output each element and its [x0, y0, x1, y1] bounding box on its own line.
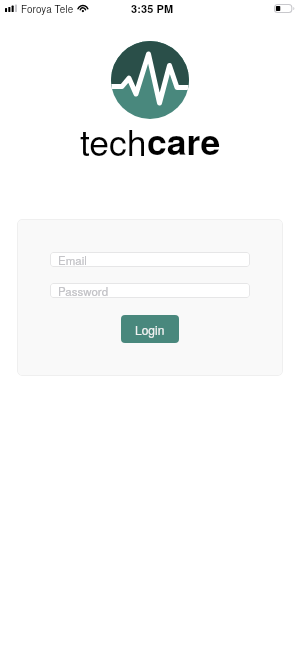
- staticText: Foroya Tele: [21, 2, 74, 16]
- button[interactable]: Password: [50, 283, 250, 298]
- staticText: Password: [58, 283, 109, 298]
- staticText: care: [147, 115, 221, 166]
- staticText: Login: [135, 321, 165, 338]
- staticText: 3:35 PM: [131, 1, 174, 17]
- button[interactable]: Email: [50, 252, 250, 267]
- staticText: Email: [58, 252, 87, 267]
- button[interactable]: Login: [121, 315, 179, 343]
- staticText: tech: [80, 115, 147, 166]
